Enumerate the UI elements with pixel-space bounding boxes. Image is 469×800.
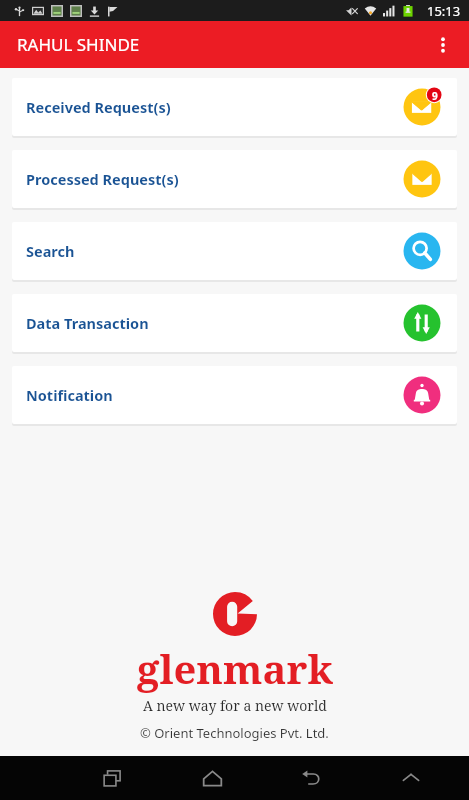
staticText: © Orient Technologies Pvt. Ltd. <box>140 724 329 742</box>
staticText: A new way for a new world <box>143 696 327 715</box>
button[interactable]: Home <box>190 756 234 800</box>
staticText: 15:13 <box>427 2 461 20</box>
staticText: Notification <box>26 385 113 405</box>
button[interactable]: Search <box>12 222 457 280</box>
staticText: Search <box>26 241 75 261</box>
button[interactable]: Data Transaction <box>12 294 457 352</box>
button[interactable]: Received Request(s) <box>12 78 457 136</box>
button[interactable]: More options <box>423 25 463 65</box>
staticText: Received Request(s) <box>26 97 171 117</box>
staticText: Data Transaction <box>26 313 149 333</box>
button[interactable]: Processed Request(s) <box>12 150 457 208</box>
staticText: RAHUL SHINDE <box>17 33 140 56</box>
staticText: glenmark <box>137 641 333 695</box>
button[interactable]: Notification <box>12 366 457 424</box>
staticText: 9 <box>432 89 438 103</box>
button[interactable]: Expand <box>389 756 433 800</box>
button[interactable]: Recent apps <box>90 756 134 800</box>
staticText: Processed Request(s) <box>26 169 179 189</box>
button[interactable]: Back <box>289 756 333 800</box>
